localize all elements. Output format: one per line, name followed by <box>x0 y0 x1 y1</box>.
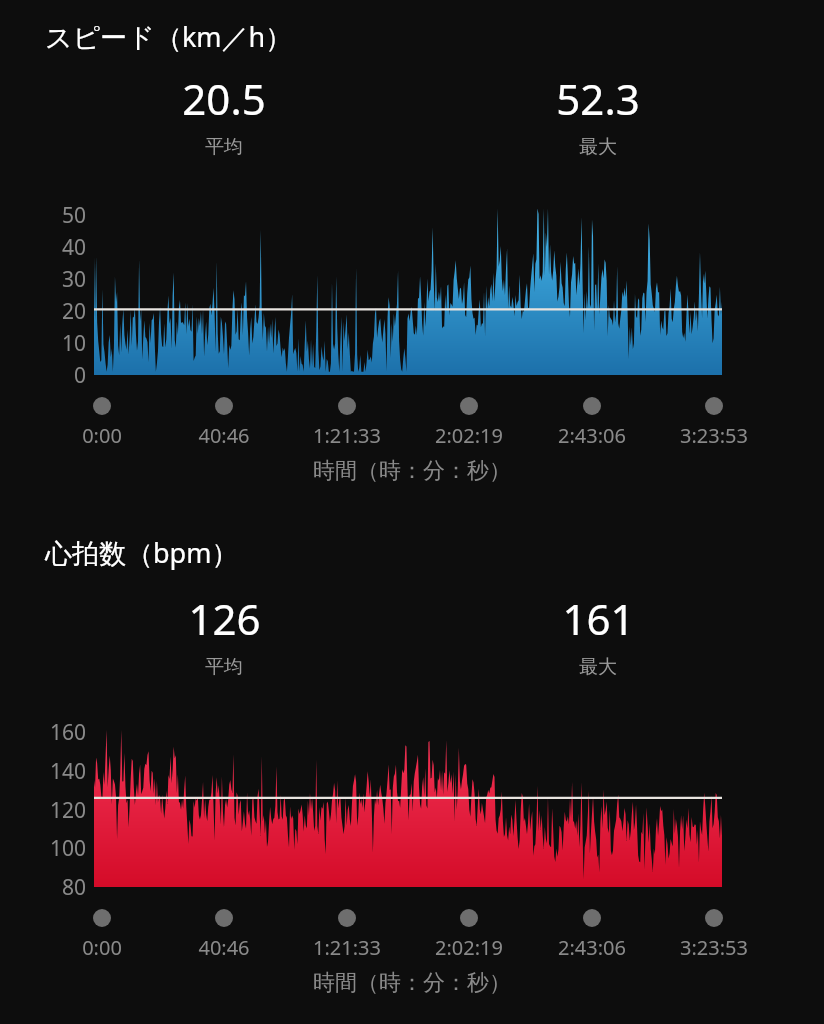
staticText: 80 <box>61 873 86 901</box>
staticText: 40:46 <box>198 934 250 961</box>
other: 心拍数（bpm） <box>94 732 722 887</box>
staticText: 20.5 <box>182 70 266 127</box>
staticText: 時間（時：分：秒） <box>313 969 511 997</box>
button[interactable]: 161 <box>498 590 698 680</box>
staticText: 平均 <box>205 135 243 159</box>
staticText: 140 <box>49 757 86 785</box>
staticText: 平均 <box>205 655 243 679</box>
staticText: 52.3 <box>556 70 640 127</box>
staticText: 1:21:33 <box>313 934 381 961</box>
staticText: 心拍数（bpm） <box>45 534 239 571</box>
staticText: 2:43:06 <box>558 422 626 449</box>
other: スピード（km／h） <box>94 215 722 375</box>
button[interactable]: 52.3 <box>498 70 698 160</box>
button[interactable]: 126 <box>124 590 324 680</box>
staticText: 3:23:53 <box>680 934 748 961</box>
staticText: 120 <box>49 796 86 824</box>
staticText: 2:02:19 <box>435 934 503 961</box>
staticText: 0 <box>73 361 86 389</box>
staticText: 100 <box>49 834 86 862</box>
staticText: 10 <box>61 329 86 357</box>
staticText: 最大 <box>579 135 617 159</box>
staticText: 20 <box>61 297 86 325</box>
staticText: 最大 <box>579 655 617 679</box>
staticText: 1:21:33 <box>313 422 381 449</box>
staticText: 40:46 <box>198 422 250 449</box>
staticText: 161 <box>562 590 635 647</box>
staticText: 0:00 <box>82 934 122 961</box>
staticText: 40 <box>61 233 86 261</box>
staticText: 0:00 <box>82 422 122 449</box>
staticText: 126 <box>188 590 261 647</box>
staticText: 時間（時：分：秒） <box>313 457 511 485</box>
staticText: スピード（km／h） <box>45 18 293 55</box>
staticText: 50 <box>61 201 86 229</box>
staticText: 3:23:53 <box>680 422 748 449</box>
button[interactable]: 20.5 <box>124 70 324 160</box>
staticText: 2:43:06 <box>558 934 626 961</box>
staticText: 2:02:19 <box>435 422 503 449</box>
staticText: 160 <box>49 718 86 746</box>
staticText: 30 <box>61 265 86 293</box>
